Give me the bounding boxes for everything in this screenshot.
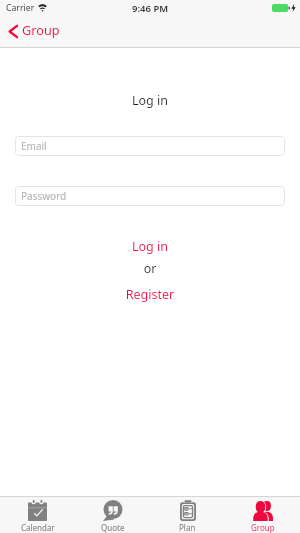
staticText: or: [0, 260, 300, 277]
button[interactable]: Register: [0, 286, 300, 303]
staticText: Group: [22, 21, 60, 38]
button[interactable]: Back to Group: [0, 20, 68, 46]
button[interactable]: Calendar: [0, 497, 75, 533]
staticText: Calendar: [21, 522, 55, 533]
button[interactable]: Password: [15, 186, 285, 206]
staticText: Group: [251, 522, 275, 533]
staticText: Log in: [0, 92, 300, 109]
button[interactable]: Quote: [75, 497, 150, 533]
staticText: Plan: [179, 522, 196, 533]
staticText: Carrier: [6, 2, 35, 14]
staticText: 9:46 PM: [132, 2, 169, 15]
staticText: Email: [21, 139, 47, 153]
button[interactable]: Email: [15, 136, 285, 156]
button[interactable]: Log in: [0, 238, 300, 255]
button[interactable]: Plan: [150, 497, 225, 533]
staticText: Quote: [101, 522, 125, 533]
button[interactable]: Group: [225, 497, 300, 533]
staticText: Password: [21, 189, 67, 203]
